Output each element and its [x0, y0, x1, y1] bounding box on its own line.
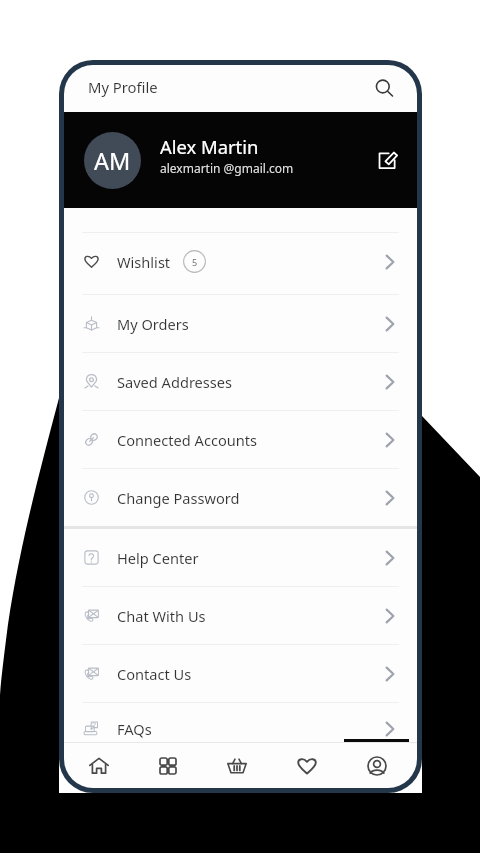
staticText: Change Password	[117, 488, 240, 508]
button[interactable]: Wishlist	[272, 743, 342, 788]
button[interactable]: Help Center	[64, 529, 417, 586]
staticText: Alex Martin	[160, 134, 259, 159]
button[interactable]: Edit profile	[372, 145, 402, 175]
button[interactable]: My Orders	[64, 295, 417, 352]
button[interactable]: Cart	[202, 743, 272, 788]
button[interactable]: Contact Us	[64, 645, 417, 702]
button[interactable]: Connected Accounts	[64, 411, 417, 468]
staticText: alexmartin @gmail.com	[160, 160, 294, 176]
staticText: Connected Accounts	[117, 430, 258, 450]
button[interactable]: Profile	[342, 743, 412, 788]
staticText: 5	[192, 256, 198, 268]
staticText: Contact Us	[117, 664, 192, 684]
staticText: My Orders	[117, 314, 189, 334]
staticText: AM	[94, 145, 131, 177]
button[interactable]: Saved Addresses	[64, 353, 417, 410]
button[interactable]: Home	[64, 743, 133, 788]
button[interactable]: Search	[369, 74, 399, 104]
staticText: Saved Addresses	[117, 372, 233, 392]
button[interactable]: FAQs	[64, 703, 417, 742]
button[interactable]: Change Password	[64, 469, 417, 526]
button[interactable]: Wishlist	[64, 233, 417, 294]
staticText: My Profile	[88, 77, 158, 97]
staticText: Chat With Us	[117, 606, 206, 626]
staticText: Help Center	[117, 548, 199, 568]
staticText: Wishlist	[117, 252, 171, 272]
button[interactable]: Categories	[133, 743, 202, 788]
staticText: FAQs	[117, 719, 152, 739]
button[interactable]: Chat With Us	[64, 587, 417, 644]
